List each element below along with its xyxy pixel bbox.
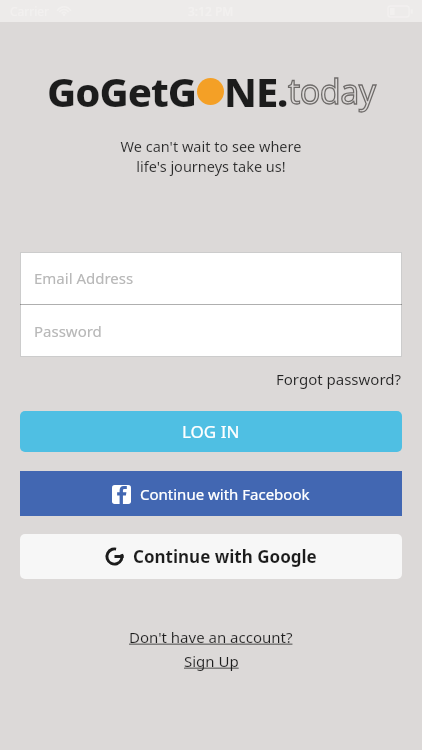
staticText: NE. bbox=[224, 64, 288, 118]
button[interactable]: LOG IN bbox=[20, 411, 402, 452]
staticText: GoGetG bbox=[47, 64, 197, 118]
button[interactable]: Sign Up bbox=[176, 649, 247, 673]
staticText: Email Address bbox=[34, 268, 134, 288]
button[interactable]: Continue with Facebook bbox=[20, 471, 402, 516]
staticText: today bbox=[288, 68, 376, 114]
staticText: Continue with Google bbox=[133, 545, 317, 568]
button[interactable]: Password bbox=[20, 305, 402, 357]
staticText: Sign Up bbox=[184, 651, 239, 671]
staticText: Don't have an account? bbox=[129, 627, 293, 647]
staticText: Password bbox=[34, 321, 102, 341]
staticText: Continue with Facebook bbox=[140, 484, 310, 504]
staticText: We can't wait to see where life's journe… bbox=[0, 136, 422, 176]
button[interactable]: Continue with Google bbox=[20, 534, 402, 579]
staticText: LOG IN bbox=[182, 420, 240, 443]
staticText: Forgot password? bbox=[276, 369, 402, 389]
button[interactable]: Email Address bbox=[20, 252, 402, 304]
button[interactable]: Don't have an account? bbox=[121, 625, 301, 649]
button[interactable]: Forgot password? bbox=[256, 363, 422, 395]
